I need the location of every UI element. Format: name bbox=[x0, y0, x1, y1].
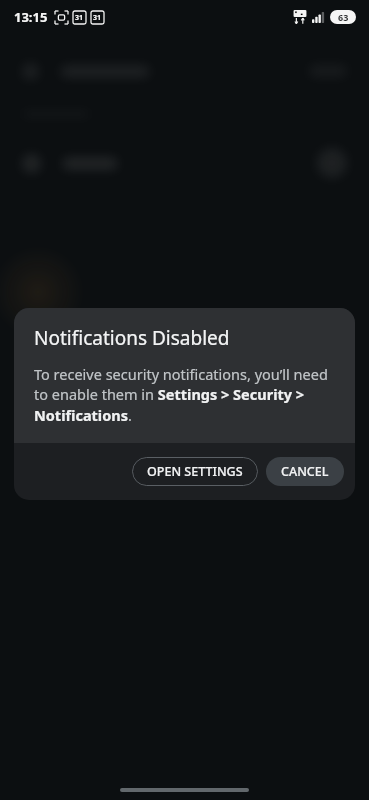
other: 5G network bbox=[293, 10, 307, 24]
staticText: 63 bbox=[338, 11, 349, 23]
staticText: 13:15 bbox=[14, 8, 48, 26]
other: Signal strength bbox=[312, 12, 324, 23]
other: Screenshot bbox=[55, 11, 68, 24]
staticText: To receive security notifications, you’l… bbox=[34, 364, 335, 426]
other: Calendar bbox=[91, 11, 104, 24]
other: Calendar bbox=[73, 11, 86, 24]
staticText: OPEN SETTINGS bbox=[147, 463, 243, 480]
button[interactable]: CANCEL bbox=[266, 457, 344, 486]
staticText: 31 bbox=[93, 13, 102, 23]
staticText: Notifications Disabled bbox=[34, 325, 230, 351]
staticText: 31 bbox=[75, 13, 84, 23]
staticText: CANCEL bbox=[281, 463, 329, 480]
button[interactable]: OPEN SETTINGS bbox=[132, 457, 258, 486]
